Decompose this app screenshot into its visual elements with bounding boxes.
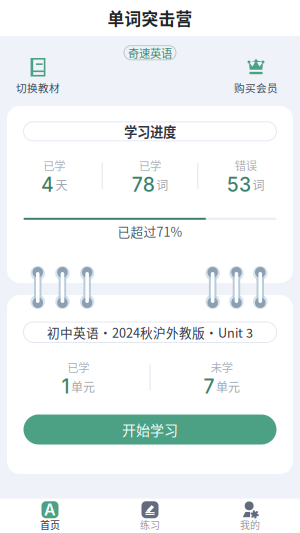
staticText: 首页 [40, 517, 60, 532]
staticText: 78 [132, 173, 155, 196]
staticText: 购买会员 [234, 80, 278, 95]
button[interactable]: 购买会员 [218, 36, 294, 106]
button[interactable]: 开始学习 [23, 414, 276, 444]
staticText: 学习进度 [124, 122, 176, 141]
staticText: 切换教材 [16, 80, 60, 95]
staticText: 奇速英语 [128, 44, 172, 61]
staticText: 开始学习 [122, 419, 178, 440]
staticText: 已超过71% [117, 222, 182, 240]
staticText: 已学 [139, 157, 161, 173]
staticText: 1 [61, 375, 69, 398]
staticText: 单词突击营 [107, 6, 192, 30]
staticText: 初中英语·2024秋沪外教版·Unit 3 [47, 323, 253, 341]
staticText: 练习 [140, 517, 160, 532]
staticText: 我的 [240, 517, 260, 532]
staticText: 7 [203, 375, 214, 398]
staticText: 4 [41, 173, 54, 196]
staticText: 错误 [235, 157, 257, 173]
staticText: 词 [252, 176, 264, 193]
staticText: 已学 [43, 157, 65, 173]
button[interactable]: 切换教材 [0, 36, 76, 106]
button[interactable]: 奇速英语 [124, 46, 176, 60]
button[interactable]: A [0, 494, 100, 533]
staticText: 单元 [71, 378, 95, 395]
button[interactable]: 练习 [100, 494, 200, 533]
staticText: 单元 [216, 378, 240, 395]
staticText: 53 [227, 173, 251, 196]
staticText: 未学 [211, 359, 233, 375]
staticText: A [44, 500, 56, 519]
staticText: 天 [56, 176, 68, 193]
staticText: 已学 [67, 359, 89, 375]
button[interactable]: 我的 [200, 494, 300, 533]
staticText: 词 [156, 176, 168, 193]
